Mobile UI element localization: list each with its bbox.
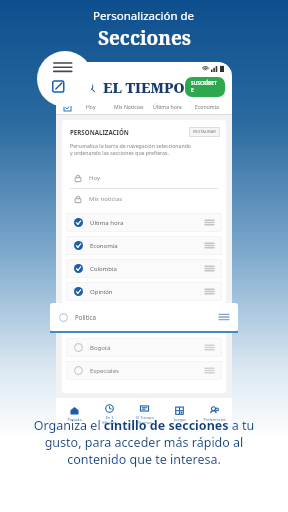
- button[interactable]: En 3 Minutos: [92, 398, 127, 430]
- staticText: Hoy: [89, 174, 101, 182]
- button[interactable]: Especiales: [66, 361, 222, 380]
- staticText: Preferencias: [203, 417, 226, 422]
- staticText: Personaliza la barra de navegación selec…: [70, 142, 193, 157]
- staticText: Mis Noticias: [114, 103, 144, 110]
- button[interactable]: Editar secciones: [62, 102, 72, 112]
- button[interactable]: Mis Noticias: [110, 99, 148, 114]
- button[interactable]: Juegos: [162, 398, 197, 430]
- staticText: Personalización de: [93, 8, 195, 24]
- button[interactable]: Última hora: [66, 213, 222, 232]
- staticText: Organiza el cintillo de secciones a tu g…: [16, 417, 272, 468]
- button[interactable]: Portada: [56, 398, 92, 430]
- button[interactable]: Última hora: [148, 99, 187, 114]
- staticText: Bogotá: [90, 344, 111, 352]
- button[interactable]: Hoy: [62, 168, 226, 188]
- button[interactable]: Economía: [187, 99, 226, 114]
- staticText: Juegos: [174, 417, 186, 422]
- button[interactable]: El Tiempo Vivimos: [127, 398, 162, 430]
- staticText: Colombia: [90, 265, 117, 273]
- staticText: RESTAURAR: [193, 129, 216, 135]
- button[interactable]: Preferencias: [197, 398, 232, 430]
- button[interactable]: Menu: [63, 77, 83, 97]
- staticText: Economía: [195, 103, 219, 110]
- staticText: PERSONALIZACIÓN: [70, 128, 129, 136]
- staticText: EL TIEMPO: [103, 78, 185, 97]
- staticText: Última hora: [90, 219, 124, 227]
- button[interactable]: RESTAURAR: [189, 127, 220, 137]
- staticText: El Tiempo Vivimos: [136, 415, 154, 425]
- staticText: Especiales: [90, 367, 119, 375]
- staticText: Mis noticias: [89, 195, 123, 203]
- button[interactable]: Buscar: [83, 80, 97, 94]
- staticText: Secciones: [98, 25, 191, 51]
- staticText: Hoy: [86, 103, 96, 110]
- button[interactable]: Menú y edición: [37, 51, 93, 107]
- staticText: En 3 Minutos: [102, 415, 117, 425]
- staticText: Economía: [90, 242, 118, 250]
- button[interactable]: Opinión: [66, 282, 222, 301]
- staticText: Política: [75, 313, 96, 321]
- button[interactable]: Hoy: [72, 99, 110, 114]
- staticText: Última hora: [153, 103, 182, 110]
- staticText: SUSCRÍBETE: [191, 80, 219, 94]
- button[interactable]: Bogotá: [66, 338, 222, 357]
- staticText: Opinión: [90, 288, 113, 296]
- button[interactable]: Economía: [66, 236, 222, 255]
- button[interactable]: Colombia: [66, 259, 222, 278]
- button[interactable]: SUSCRÍBETE: [185, 77, 225, 97]
- button[interactable]: Política: [50, 303, 238, 331]
- button[interactable]: Mis noticias: [62, 189, 226, 209]
- staticText: Portada: [67, 417, 82, 422]
